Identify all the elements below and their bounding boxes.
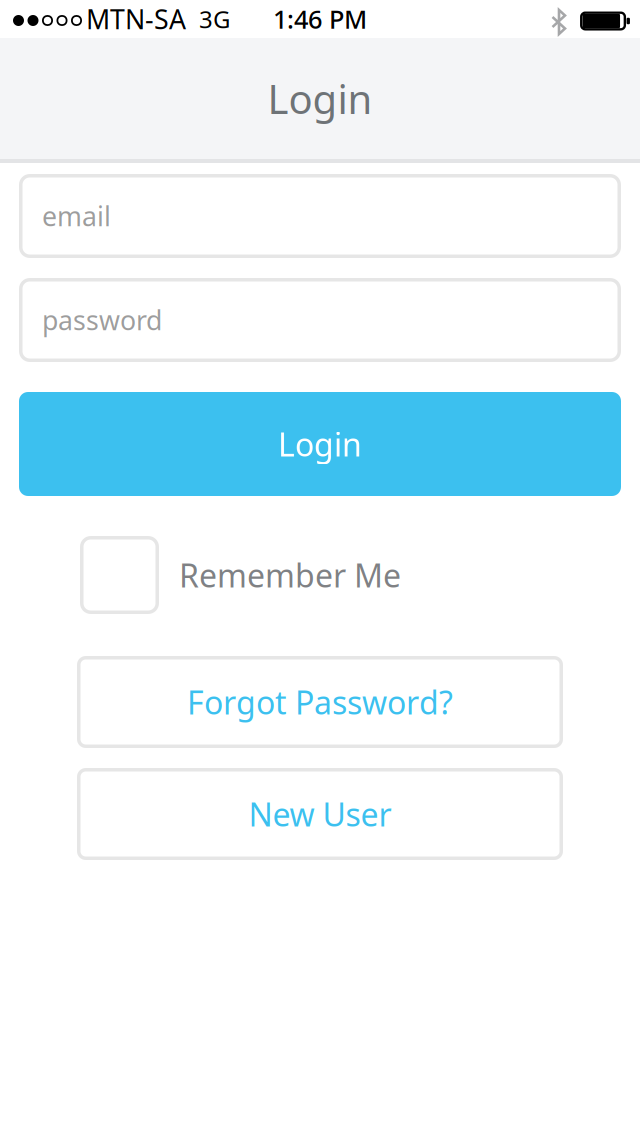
staticText: Remember Me: [179, 554, 401, 596]
staticText: 1:46 PM: [273, 2, 367, 36]
staticText: Login: [267, 72, 372, 125]
staticText: MTN-SA: [86, 1, 186, 37]
staticText: password: [42, 302, 162, 338]
button[interactable]: New User: [77, 768, 563, 860]
staticText: Login: [278, 423, 362, 465]
button[interactable]: Forgot Password?: [77, 656, 563, 748]
button[interactable]: email: [19, 174, 621, 258]
staticText: New User: [248, 793, 391, 835]
button[interactable]: Login: [19, 392, 621, 496]
button[interactable]: Remember Me: [80, 536, 401, 614]
staticText: Forgot Password?: [187, 681, 453, 723]
staticText: email: [42, 198, 111, 234]
staticText: 3G: [199, 3, 230, 35]
button[interactable]: password: [19, 278, 621, 362]
